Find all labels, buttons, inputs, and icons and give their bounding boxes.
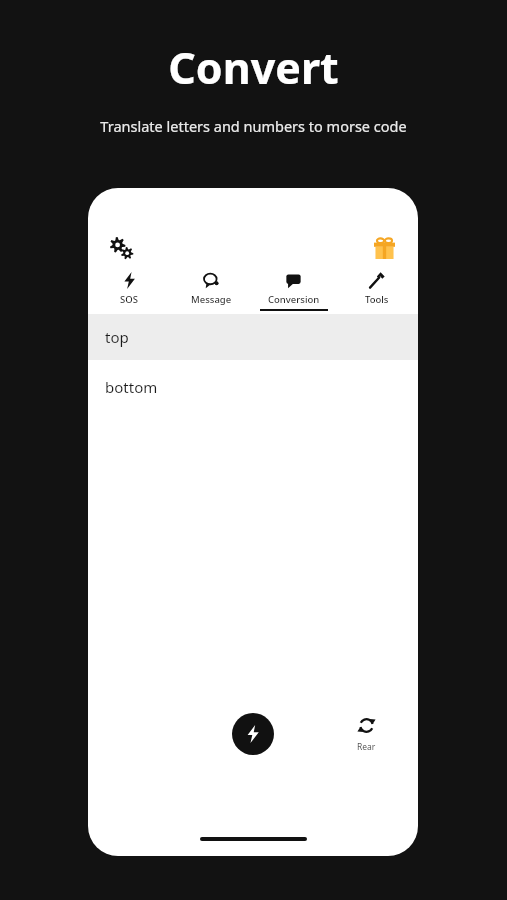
button[interactable]: SOS bbox=[88, 272, 170, 314]
button[interactable]: Flash bbox=[232, 713, 274, 755]
staticText: Conversion bbox=[268, 293, 320, 306]
button[interactable]: Settings bbox=[106, 232, 138, 264]
staticText: Tools bbox=[365, 293, 389, 306]
staticText: top bbox=[105, 327, 129, 347]
staticText: bottom bbox=[105, 377, 158, 397]
staticText: Message bbox=[191, 293, 232, 306]
button[interactable]: Gift bbox=[368, 232, 400, 264]
button[interactable]: top bbox=[88, 314, 418, 360]
button[interactable]: Switch camera: Rear bbox=[346, 716, 386, 753]
button[interactable]: Message bbox=[170, 272, 252, 314]
staticText: Translate letters and numbers to morse c… bbox=[100, 116, 407, 136]
staticText: SOS bbox=[120, 293, 138, 306]
staticText: Convert bbox=[168, 38, 339, 97]
button[interactable]: bottom bbox=[88, 360, 418, 414]
button[interactable]: Conversion bbox=[252, 272, 335, 314]
staticText: Rear bbox=[357, 741, 376, 753]
button[interactable]: Tools bbox=[335, 272, 418, 314]
